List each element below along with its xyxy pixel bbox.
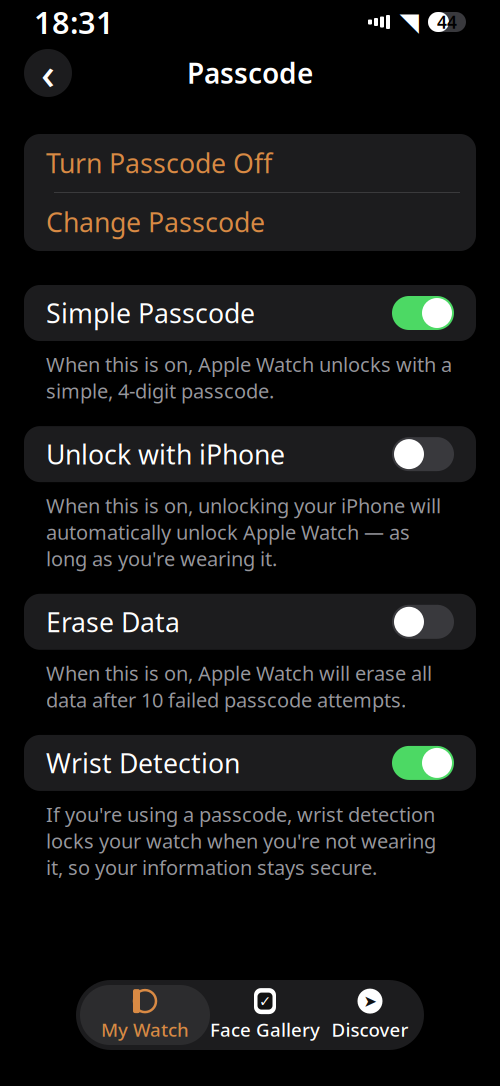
staticText: Discover xyxy=(331,1017,408,1042)
staticText: ◥ xyxy=(399,8,418,36)
staticText: Face Gallery xyxy=(210,1017,320,1042)
staticText: When this is on, unlocking your iPhone w… xyxy=(46,492,441,572)
staticText: If you're using a passcode, wrist detect… xyxy=(46,801,436,881)
staticText: Passcode xyxy=(187,54,313,92)
staticText: Erase Data xyxy=(46,604,180,639)
staticText: My Watch xyxy=(101,1017,189,1042)
button[interactable]: Unlock with iPhone xyxy=(24,426,476,482)
button[interactable]: Erase Data xyxy=(24,594,476,650)
staticText: ➤ xyxy=(363,992,376,1010)
staticText: When this is on, Apple Watch will erase … xyxy=(46,660,432,713)
button[interactable]: Simple Passcode xyxy=(24,285,476,341)
staticText: When this is on, Apple Watch unlocks wit… xyxy=(46,351,452,404)
button[interactable]: Change Passcode xyxy=(24,193,476,251)
button[interactable]: My Watch xyxy=(80,985,210,1045)
staticText: 18:31 xyxy=(34,2,114,42)
button[interactable]: ✓ xyxy=(210,985,320,1045)
staticText: ‹ xyxy=(41,45,55,101)
staticText: 44 xyxy=(437,10,457,33)
staticText: ✓ xyxy=(259,993,271,1009)
button[interactable]: Wrist Detection xyxy=(24,735,476,791)
button[interactable]: Back xyxy=(24,49,72,97)
staticText: Wrist Detection xyxy=(46,745,240,781)
staticText: Change Passcode xyxy=(46,204,265,240)
staticText: Simple Passcode xyxy=(46,295,255,331)
button[interactable]: Turn Passcode Off xyxy=(24,134,476,192)
button[interactable]: ➤ xyxy=(320,985,420,1045)
staticText: Unlock with iPhone xyxy=(46,436,285,472)
staticText: Turn Passcode Off xyxy=(46,145,272,181)
